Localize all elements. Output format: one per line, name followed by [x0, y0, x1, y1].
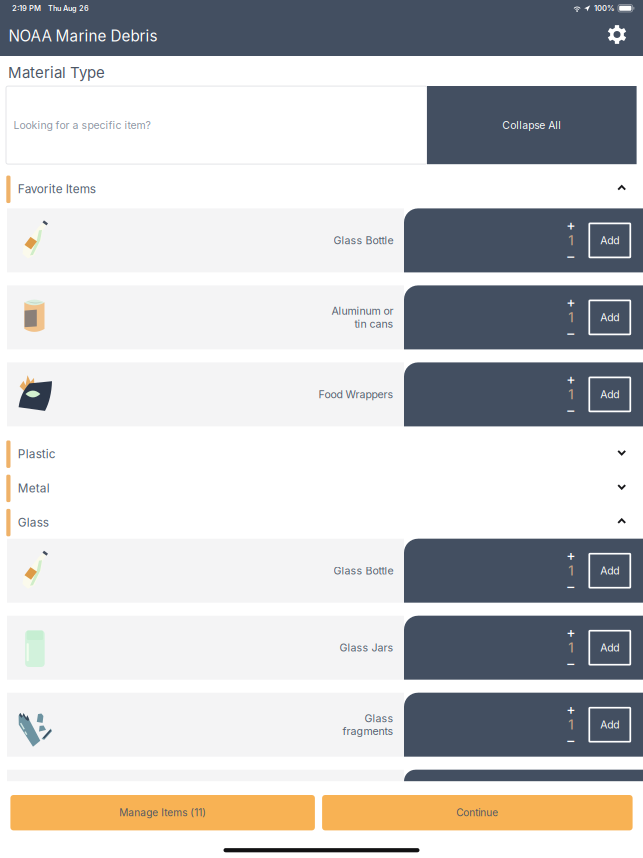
- staticText: +: [566, 701, 575, 718]
- button[interactable]: Favorite Items: [0, 171, 643, 205]
- staticText: +: [566, 371, 575, 388]
- staticText: Glass fragments: [342, 712, 393, 738]
- staticText: Collapse All: [502, 119, 561, 131]
- button[interactable]: Decrease: [561, 581, 581, 593]
- staticText: Continue: [456, 807, 498, 819]
- button[interactable]: Add: [589, 223, 630, 257]
- staticText: –: [567, 248, 574, 265]
- staticText: Manage Items (11): [119, 807, 206, 819]
- button[interactable]: Add: [589, 708, 630, 742]
- staticText: 1: [568, 386, 573, 402]
- staticText: Aluminum or tin cans: [331, 305, 393, 330]
- button[interactable]: Increase: [561, 295, 581, 309]
- staticText: –: [567, 578, 574, 595]
- staticText: Thu Aug 26: [48, 4, 89, 13]
- staticText: +: [566, 294, 575, 311]
- button[interactable]: Decrease: [561, 250, 581, 262]
- button[interactable]: Decrease: [561, 404, 581, 416]
- staticText: NOAA Marine Debris: [8, 27, 157, 45]
- staticText: Metal: [18, 481, 50, 495]
- button[interactable]: Collapse All: [427, 86, 637, 164]
- staticText: Food Wrappers: [318, 388, 393, 401]
- button[interactable]: Decrease: [561, 735, 581, 747]
- staticText: Add: [600, 641, 619, 654]
- staticText: Looking for a specific item?: [13, 119, 150, 131]
- staticText: +: [566, 547, 575, 564]
- staticText: Add: [600, 718, 619, 731]
- button[interactable]: Glass: [0, 504, 643, 538]
- staticText: +: [566, 624, 575, 641]
- staticText: Add: [600, 388, 619, 401]
- button[interactable]: Metal: [0, 470, 643, 504]
- button[interactable]: Continue: [322, 795, 633, 830]
- button[interactable]: Decrease: [561, 658, 581, 670]
- staticText: Favorite Items: [18, 182, 96, 196]
- button[interactable]: Increase: [561, 703, 581, 717]
- staticText: –: [567, 402, 574, 419]
- staticText: 1: [568, 232, 573, 248]
- staticText: Glass Jars: [339, 641, 393, 654]
- button[interactable]: Add: [589, 300, 630, 334]
- button[interactable]: Increase: [561, 372, 581, 386]
- button[interactable]: Increase: [561, 626, 581, 640]
- staticText: Plastic: [18, 447, 56, 461]
- staticText: –: [567, 732, 574, 749]
- staticText: Add: [600, 564, 619, 577]
- staticText: Add: [600, 234, 619, 247]
- staticText: Glass: [18, 515, 49, 529]
- button[interactable]: Settings: [607, 24, 627, 50]
- staticText: 1: [568, 309, 573, 325]
- staticText: 1: [568, 563, 573, 578]
- button[interactable]: Increase: [561, 218, 581, 232]
- staticText: 2:19 PM: [12, 4, 41, 13]
- staticText: 1: [568, 640, 573, 655]
- staticText: Add: [600, 311, 619, 324]
- staticText: 1: [568, 717, 573, 732]
- button[interactable]: Plastic: [0, 436, 643, 470]
- staticText: –: [567, 325, 574, 342]
- staticText: Material Type: [8, 63, 105, 81]
- staticText: Glass Bottle: [333, 564, 393, 577]
- button[interactable]: Increase: [561, 549, 581, 563]
- staticText: Glass Bottle: [333, 234, 393, 247]
- staticText: 100%: [594, 4, 615, 13]
- button[interactable]: Add: [589, 377, 630, 411]
- staticText: –: [567, 655, 574, 672]
- button[interactable]: Add: [589, 554, 630, 588]
- staticText: +: [566, 217, 575, 234]
- button[interactable]: Add: [589, 631, 630, 665]
- button[interactable]: Manage Items (11): [10, 795, 315, 830]
- button[interactable]: Decrease: [561, 327, 581, 339]
